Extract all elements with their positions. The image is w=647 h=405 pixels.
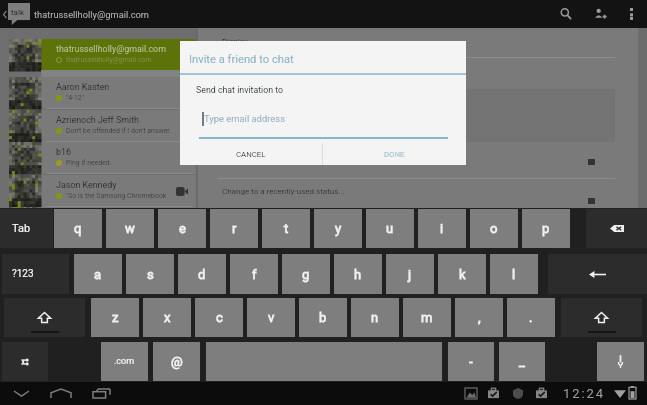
button[interactable]: a	[74, 254, 122, 294]
button[interactable]: r	[210, 209, 258, 248]
staticText: d	[198, 267, 206, 282]
staticText: l	[512, 267, 516, 282]
button[interactable]: .	[507, 298, 555, 337]
staticText: b16	[56, 147, 71, 157]
button[interactable]: Keyboard settings	[2, 342, 48, 381]
button[interactable]: j	[386, 254, 434, 294]
button[interactable]: e	[158, 209, 206, 248]
button[interactable]: h	[334, 254, 382, 294]
button[interactable]: @	[153, 342, 200, 381]
staticText: Display	[222, 37, 248, 46]
button[interactable]: c	[195, 298, 243, 337]
staticText: f	[252, 267, 257, 282]
button[interactable]: x	[143, 298, 191, 337]
button[interactable]: DONE	[323, 143, 466, 165]
staticText: Tab	[12, 222, 31, 235]
button[interactable]: .com	[101, 342, 148, 381]
button[interactable]: Azrienoch Jeff Smith	[0, 110, 196, 142]
button[interactable]: o	[470, 209, 518, 248]
staticText: Jason Kennedy	[56, 180, 117, 190]
button[interactable]: CANCEL	[180, 143, 322, 165]
staticText: j	[408, 267, 412, 282]
button[interactable]: w	[106, 209, 154, 248]
button[interactable]: m	[403, 298, 451, 337]
button[interactable]: -	[448, 342, 494, 381]
button[interactable]: Voice input	[597, 342, 644, 381]
staticText: i	[440, 221, 444, 236]
staticText: w	[125, 221, 135, 236]
button[interactable]: i	[418, 209, 466, 248]
staticText: _	[519, 354, 525, 369]
button[interactable]: Shift	[4, 298, 85, 337]
button[interactable]: f	[230, 254, 278, 294]
staticText: thatrussellholly@gmail.com	[56, 44, 166, 54]
button[interactable]: Aaron Kasten	[0, 77, 196, 109]
button[interactable]: Home	[41, 382, 81, 405]
staticText: "So is the Samsung Chromebook	[66, 192, 167, 200]
button[interactable]: q	[54, 209, 102, 248]
button[interactable]: k	[438, 254, 486, 294]
staticText: q	[74, 221, 82, 236]
button[interactable]: z	[91, 298, 139, 337]
button[interactable]: b	[299, 298, 347, 337]
button[interactable]: _	[499, 342, 545, 381]
staticText: thatrussellholly@gmail.com	[66, 56, 152, 64]
button[interactable]: Jerry Hildenbrand	[0, 207, 196, 239]
staticText: s	[147, 267, 154, 282]
staticText: Invite a friend to chat	[189, 53, 294, 66]
staticText: Azrienoch Jeff Smith	[56, 115, 139, 125]
staticText: m	[421, 310, 433, 325]
staticText: o	[490, 221, 498, 236]
staticText: Change to a recently-used status...	[222, 187, 345, 196]
staticText: ?123	[12, 268, 34, 280]
button[interactable]: thatrussellholly@gmail.com	[0, 39, 196, 71]
button[interactable]: b16	[0, 142, 196, 174]
staticText: z	[112, 310, 119, 325]
staticText: Aaron Kasten	[56, 82, 110, 92]
button[interactable]: ,	[455, 298, 503, 337]
button[interactable]: l	[490, 254, 538, 294]
button[interactable]: s	[126, 254, 174, 294]
staticText: x	[164, 310, 171, 325]
staticText: Don't be offended if I don't answer.	[66, 127, 172, 135]
staticText: Ping if needed.	[66, 159, 112, 167]
staticText: a	[94, 267, 102, 282]
button[interactable]: d	[178, 254, 226, 294]
button[interactable]: Enter	[548, 254, 647, 294]
staticText: thatrussellholly@gmail.com	[34, 9, 149, 20]
staticText: t	[284, 221, 289, 236]
button[interactable]: u	[366, 209, 414, 248]
staticText: ,	[478, 310, 481, 325]
staticText: y	[335, 221, 342, 236]
button[interactable]: Backspace	[586, 209, 647, 248]
staticText: "4-12"	[66, 94, 84, 102]
button[interactable]: More options	[618, 0, 644, 28]
button[interactable]: Tab	[0, 209, 53, 248]
staticText: CANCEL	[236, 150, 266, 159]
button[interactable]: Add friend	[583, 0, 617, 28]
button[interactable]: y	[314, 209, 362, 248]
staticText: .	[529, 310, 533, 325]
staticText: c	[216, 310, 223, 325]
staticText: .com	[114, 356, 135, 367]
staticText: Type email address	[204, 113, 285, 124]
staticText: @	[171, 354, 183, 369]
staticText: v	[268, 310, 275, 325]
button[interactable]: Jason Kennedy	[0, 175, 196, 207]
staticText: 12:24	[563, 386, 605, 401]
button[interactable]: t	[262, 209, 310, 248]
staticText: p	[542, 221, 550, 236]
button[interactable]: Search	[548, 0, 584, 28]
button[interactable]: n	[351, 298, 399, 337]
button[interactable]: g	[282, 254, 330, 294]
button[interactable]: p	[522, 209, 570, 248]
button[interactable]: Recents	[81, 382, 122, 405]
button[interactable]: ?123	[2, 254, 69, 294]
staticText: g	[302, 267, 310, 282]
button[interactable]: Up	[0, 0, 647, 28]
button[interactable]: v	[247, 298, 295, 337]
button[interactable]: Shift	[561, 298, 642, 337]
staticText: n	[371, 310, 379, 325]
button[interactable]: Hide keyboard	[1, 382, 41, 405]
